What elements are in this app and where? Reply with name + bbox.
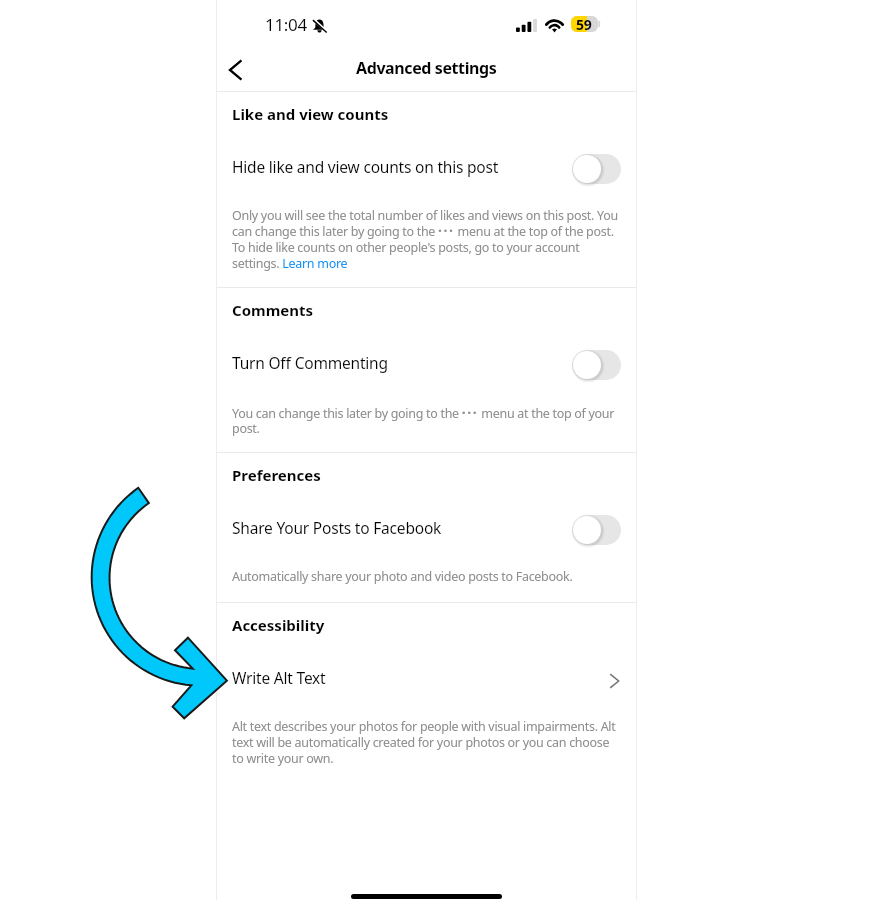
button[interactable]: Write Alt Text [216, 647, 637, 708]
staticText: Share Your Posts to Facebook [232, 517, 572, 538]
staticText: Write Alt Text [232, 667, 601, 688]
button[interactable]: Toggle [572, 350, 621, 380]
staticText: Advanced settings [356, 57, 497, 79]
staticText: 11:04 [265, 13, 307, 36]
staticText: 59 [576, 15, 592, 31]
button[interactable]: Toggle [572, 515, 621, 545]
staticText: Preferences [232, 465, 321, 485]
staticText: Only you will see the total number of li… [232, 207, 621, 272]
staticText: Accessibility [232, 615, 325, 635]
staticText: Like and view counts [232, 104, 389, 124]
button[interactable]: Back [212, 48, 256, 92]
staticText: Hide like and view counts on this post [232, 156, 572, 177]
staticText: Alt text describes your photos for peopl… [232, 718, 621, 767]
button[interactable]: Turn Off Commenting [216, 332, 637, 393]
staticText: Turn Off Commenting [232, 352, 572, 373]
staticText: Automatically share your photo and video… [232, 568, 573, 585]
staticText: You can change this later by going to th… [232, 403, 621, 437]
button[interactable]: Hide like and view counts on this post [216, 136, 637, 197]
staticText: Comments [232, 300, 314, 320]
button[interactable]: Toggle [572, 154, 621, 184]
button[interactable]: Share Your Posts to Facebook [216, 497, 637, 558]
